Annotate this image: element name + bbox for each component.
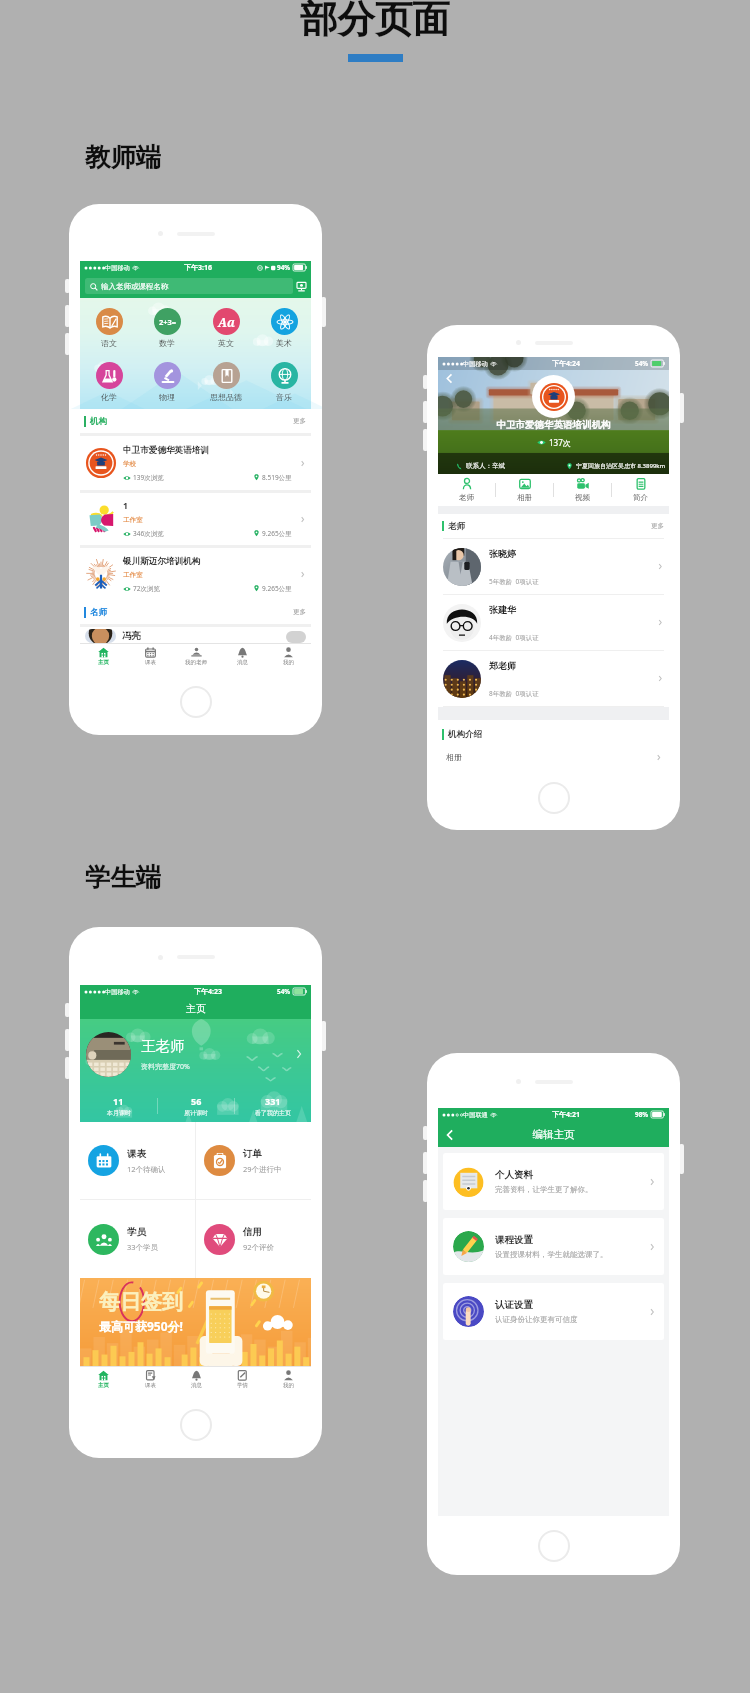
button[interactable]: 化学 xyxy=(83,362,135,402)
staticText: 机构 xyxy=(90,416,107,427)
button[interactable]: 王老师 xyxy=(86,1019,306,1089)
staticText: 33个学员 xyxy=(127,1242,159,1252)
button[interactable]: 学员 xyxy=(80,1200,195,1278)
staticText: 9.265公里 xyxy=(262,584,292,593)
staticText: 银川斯迈尔培训机构 xyxy=(123,556,201,567)
button[interactable]: 相册 xyxy=(496,474,553,506)
staticText: 物理 xyxy=(159,392,175,402)
staticText: 1 xyxy=(123,500,128,512)
staticText: 学生端 xyxy=(85,862,162,894)
button[interactable]: 主页 xyxy=(80,644,127,669)
button[interactable]: 张晓婷 xyxy=(438,539,669,594)
button[interactable]: 认证设置 xyxy=(443,1283,664,1340)
button[interactable]: 更多 xyxy=(646,522,669,530)
staticText: 工作室 xyxy=(123,571,143,579)
staticText: 更多 xyxy=(651,522,664,530)
staticText: 完善资料，让学生更了解你。 xyxy=(495,1185,593,1194)
staticText: 认证身份让你更有可信度 xyxy=(495,1315,578,1324)
staticText: 我的老师 xyxy=(185,659,207,666)
staticText: 看了我的主页 xyxy=(255,1109,291,1117)
staticText: 54% xyxy=(635,359,649,368)
staticText: 累计课时 xyxy=(184,1109,208,1117)
staticText: 认证设置 xyxy=(495,1299,533,1311)
button[interactable]: 相册 xyxy=(438,748,669,766)
staticText: 数学 xyxy=(159,338,175,348)
staticText: 最高可获950分! xyxy=(99,1318,183,1334)
button[interactable]: 我的 xyxy=(265,1367,311,1392)
staticText: 本月课时 xyxy=(107,1109,131,1117)
staticText: 92个评价 xyxy=(243,1242,275,1252)
staticText: 56 xyxy=(191,1095,202,1107)
staticText: 消息 xyxy=(237,659,248,666)
button[interactable]: 中卫市爱德华英语培训 xyxy=(80,436,311,490)
staticText: 更多 xyxy=(293,417,306,425)
button[interactable]: 思想品德 xyxy=(200,362,252,402)
staticText: 编辑主页 xyxy=(458,1128,649,1141)
staticText: 主页 xyxy=(98,1382,109,1389)
button[interactable]: 学情 xyxy=(219,1367,265,1392)
staticText: 中卫市爱德华英语培训 xyxy=(123,445,209,456)
staticText: 工作室 xyxy=(123,516,143,524)
staticText: 中国移动 xyxy=(463,360,488,368)
staticText: 资料完整度70% xyxy=(141,1062,190,1072)
staticText: 名师 xyxy=(90,607,107,618)
button[interactable]: 美术 xyxy=(258,308,310,348)
button[interactable]: 我的老师 xyxy=(173,644,219,669)
staticText: 课表 xyxy=(127,1148,146,1160)
button[interactable]: 课表 xyxy=(80,1122,195,1199)
staticText: 个人资料 xyxy=(495,1169,533,1181)
button[interactable]: 郑老师 xyxy=(438,651,669,706)
button[interactable]: 银川斯迈尔培训机构 xyxy=(80,548,311,600)
button[interactable]: 消息 xyxy=(173,1367,219,1392)
staticText: 下午4:23 xyxy=(194,987,222,997)
staticText: 信用 xyxy=(243,1226,262,1238)
staticText: 8年教龄 0项认证 xyxy=(489,689,539,698)
staticText: 12个待确认 xyxy=(127,1164,166,1174)
staticText: 我的 xyxy=(283,1382,294,1389)
button[interactable]: 语文 xyxy=(83,308,135,348)
button[interactable]: 订单 xyxy=(196,1122,311,1199)
staticText: 机构介绍 xyxy=(448,729,482,740)
staticText: 相册 xyxy=(517,493,532,502)
staticText: 下午3:16 xyxy=(184,263,212,273)
staticText: 9.265公里 xyxy=(262,529,292,538)
staticText: 72次浏览 xyxy=(133,584,160,593)
button[interactable]: 个人资料 xyxy=(443,1153,664,1210)
button[interactable]: 信用 xyxy=(196,1200,311,1278)
button[interactable]: 消息 xyxy=(219,644,265,669)
staticText: 化学 xyxy=(101,392,117,402)
button[interactable]: Aa xyxy=(200,308,252,348)
button[interactable]: 1 xyxy=(80,493,311,545)
staticText: 简介 xyxy=(633,493,648,502)
button[interactable]: 课表 xyxy=(127,1367,173,1392)
staticText: 冯亮 xyxy=(122,630,141,642)
button[interactable]: 更多 xyxy=(288,417,311,425)
staticText: 教师端 xyxy=(85,142,162,174)
button[interactable]: 张建华 xyxy=(438,595,669,650)
staticText: 相册 xyxy=(446,752,462,762)
staticText: 课表 xyxy=(145,659,156,666)
staticText: 输入老师或课程名称 xyxy=(101,282,169,291)
staticText: 中国移动 xyxy=(105,264,130,272)
button[interactable]: 简介 xyxy=(612,474,669,506)
button[interactable]: 音乐 xyxy=(258,362,310,402)
staticText: 宁夏回族自治区吴忠市 8.3899km xyxy=(576,462,666,470)
button[interactable]: Scan QR code xyxy=(293,278,309,294)
staticText: 老师 xyxy=(459,493,474,502)
button[interactable]: Back xyxy=(441,1126,458,1143)
staticText: 学员 xyxy=(127,1226,146,1238)
button[interactable]: 主页 xyxy=(80,1367,127,1392)
staticText: 思想品德 xyxy=(210,392,242,402)
button[interactable]: 课程设置 xyxy=(443,1218,664,1275)
staticText: 联系人：辛斌 xyxy=(466,462,505,470)
button[interactable]: 我的 xyxy=(265,644,311,669)
button[interactable]: 老师 xyxy=(438,474,495,506)
button[interactable]: 更多 xyxy=(288,608,311,616)
button[interactable]: 视频 xyxy=(554,474,611,506)
button[interactable]: 课表 xyxy=(127,644,173,669)
button[interactable]: Back xyxy=(441,370,457,386)
staticText: 部分页面 xyxy=(0,0,750,43)
button[interactable]: 2+3= xyxy=(141,308,193,348)
button[interactable]: 物理 xyxy=(141,362,193,402)
button[interactable]: 输入老师或课程名称 xyxy=(85,278,293,294)
